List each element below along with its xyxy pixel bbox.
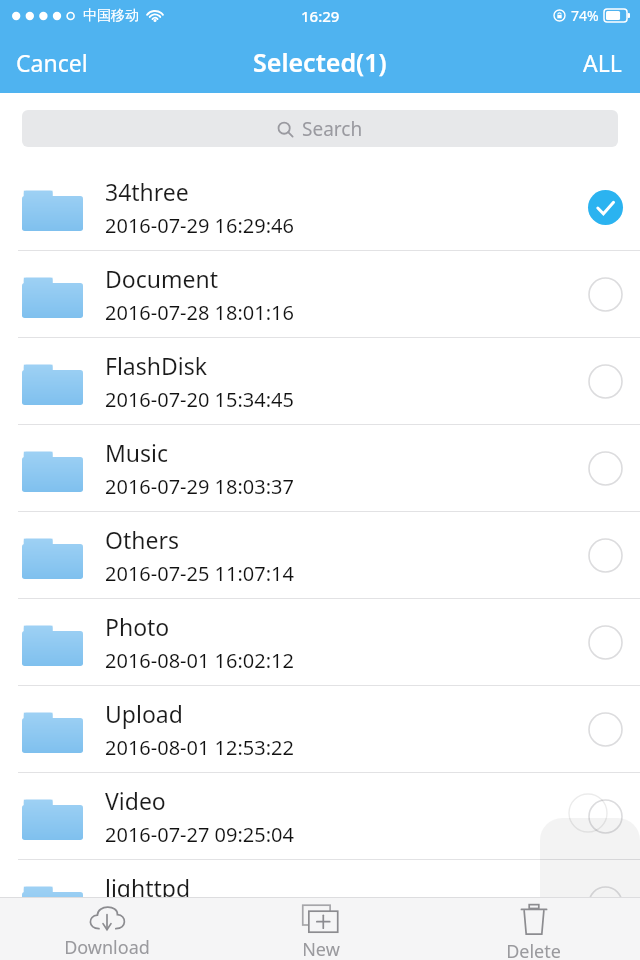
staticText: 2016-07-29 18:03:37 bbox=[105, 473, 294, 500]
button[interactable]: Upload bbox=[0, 686, 640, 772]
button[interactable]: Select bbox=[575, 699, 635, 759]
button[interactable]: Selected bbox=[575, 177, 635, 237]
button[interactable]: New bbox=[214, 898, 427, 960]
button[interactable]: Delete bbox=[427, 898, 640, 960]
button[interactable]: Download bbox=[0, 898, 214, 960]
button[interactable]: Others bbox=[0, 512, 640, 598]
button[interactable]: Select bbox=[575, 525, 635, 585]
button[interactable]: Document bbox=[0, 251, 640, 337]
staticText: 16:29 bbox=[301, 6, 340, 26]
staticText: 中国移动 bbox=[83, 7, 139, 25]
staticText: Others bbox=[105, 524, 179, 555]
button[interactable]: ALL bbox=[565, 31, 640, 93]
button[interactable]: Video bbox=[0, 773, 640, 859]
staticText: 2016-07-28 18:01:16 bbox=[105, 299, 294, 326]
staticText: 2016-07-27 09:25:04 bbox=[105, 821, 294, 848]
button[interactable]: Photo bbox=[0, 599, 640, 685]
staticText: Selected(1) bbox=[253, 45, 387, 79]
staticText: Video bbox=[105, 785, 166, 816]
staticText: Download bbox=[64, 935, 150, 960]
staticText: 34three bbox=[105, 176, 189, 207]
button[interactable]: 34three bbox=[0, 164, 640, 250]
staticText: ALL bbox=[583, 47, 622, 78]
button[interactable]: Select bbox=[575, 873, 635, 933]
staticText: 2016-08-01 16:02:12 bbox=[105, 647, 294, 674]
button[interactable]: Select bbox=[575, 612, 635, 672]
button[interactable]: FlashDisk bbox=[0, 338, 640, 424]
staticText: 2016-07-29 16:29:46 bbox=[105, 212, 294, 239]
staticText: Photo bbox=[105, 611, 170, 642]
staticText: New bbox=[302, 937, 340, 960]
button[interactable]: Select bbox=[575, 786, 635, 846]
staticText: 2016-07-25 11:07:14 bbox=[105, 560, 294, 587]
button[interactable]: Music bbox=[0, 425, 640, 511]
staticText: Music bbox=[105, 437, 169, 468]
button[interactable]: Select bbox=[575, 438, 635, 498]
staticText: 2016-07-20 15:34:45 bbox=[105, 386, 294, 413]
button[interactable]: Select bbox=[575, 264, 635, 324]
staticText: lighttpd bbox=[105, 872, 191, 903]
staticText: 2016-08-01 12:53:22 bbox=[105, 734, 294, 761]
staticText: Upload bbox=[105, 698, 183, 729]
staticText: Search bbox=[302, 116, 363, 142]
button[interactable]: Cancel bbox=[0, 31, 104, 93]
staticText: Document bbox=[105, 263, 218, 294]
button[interactable]: Select bbox=[575, 351, 635, 411]
button[interactable]: Search bbox=[22, 110, 618, 147]
staticText: 2016-07-26 10:12:08 bbox=[105, 908, 294, 935]
staticText: Cancel bbox=[16, 47, 88, 78]
staticText: Delete bbox=[506, 939, 561, 960]
staticText: FlashDisk bbox=[105, 350, 208, 381]
staticText: 74% bbox=[571, 6, 599, 25]
button[interactable]: lighttpd bbox=[0, 860, 640, 946]
